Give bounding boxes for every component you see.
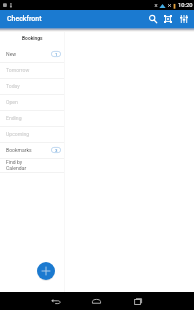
staticText: Find by <box>6 159 23 165</box>
button[interactable]: Open <box>0 95 64 110</box>
button[interactable]: Find by <box>0 159 64 172</box>
button[interactable]: Ending <box>0 111 64 126</box>
staticText: Calendar <box>6 165 27 171</box>
button[interactable]: New <box>0 47 64 62</box>
staticText: Tomorrow <box>6 67 30 73</box>
button[interactable]: Upcoming <box>0 127 64 142</box>
staticText: 1 <box>55 52 58 57</box>
staticText: New <box>6 51 17 57</box>
button[interactable]: Recent apps <box>117 292 158 310</box>
staticText: Checkfront <box>7 15 42 23</box>
button[interactable]: Filter <box>176 10 192 28</box>
staticText: Today <box>6 83 20 89</box>
staticText: 10:20 <box>178 2 193 9</box>
button[interactable]: Search <box>144 10 160 28</box>
staticText: Upcoming <box>6 131 30 137</box>
button[interactable]: Tomorrow <box>0 63 64 78</box>
button[interactable]: Bookmarks <box>0 143 64 158</box>
button[interactable]: Today <box>0 79 64 94</box>
staticText: Open <box>6 99 18 105</box>
button[interactable]: Back <box>36 292 76 310</box>
staticText: Bookings <box>22 35 43 41</box>
button[interactable]: Scan code <box>160 10 176 28</box>
button[interactable]: Home <box>76 292 117 310</box>
staticText: Bookmarks <box>6 147 32 153</box>
staticText: Ending <box>6 115 22 121</box>
button[interactable]: Add booking <box>37 262 55 280</box>
staticText: 3 <box>55 148 58 153</box>
